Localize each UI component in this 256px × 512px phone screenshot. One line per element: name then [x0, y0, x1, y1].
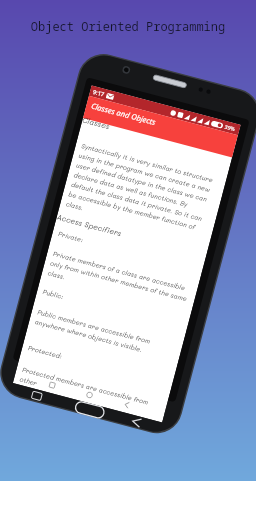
staticText: Object Oriented Programming [0, 18, 256, 34]
